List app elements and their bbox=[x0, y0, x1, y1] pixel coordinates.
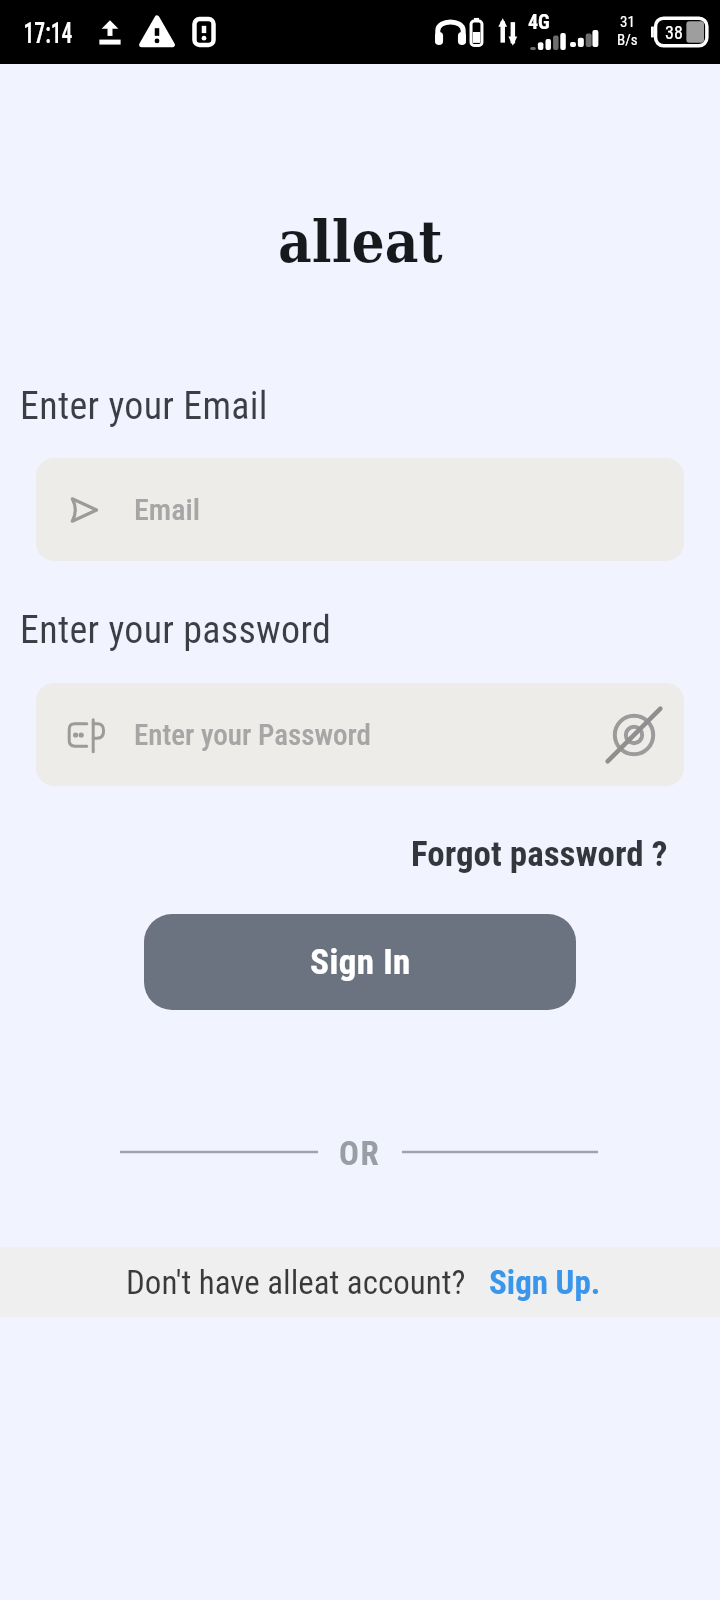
button[interactable]: Email bbox=[36, 458, 684, 561]
button[interactable]: Enter your Password bbox=[36, 683, 684, 786]
staticText: Sign In bbox=[310, 942, 411, 983]
staticText: 17:14 bbox=[23, 15, 72, 50]
button[interactable] bbox=[610, 711, 658, 759]
staticText: alleat bbox=[278, 208, 443, 276]
staticText: Enter your Password bbox=[134, 718, 371, 752]
button[interactable]: Sign In bbox=[144, 914, 576, 1010]
staticText: 38 bbox=[665, 22, 683, 43]
staticText: 31 bbox=[620, 13, 635, 31]
staticText: Email bbox=[134, 492, 201, 527]
staticText: Don't have alleat account? bbox=[126, 1263, 466, 1302]
button[interactable]: Forgot password ? bbox=[411, 834, 668, 875]
staticText: 4G bbox=[528, 10, 550, 33]
staticText: Enter your Email bbox=[20, 384, 268, 429]
button[interactable]: Sign Up. bbox=[489, 1263, 601, 1302]
staticText: OR bbox=[339, 1134, 381, 1173]
staticText: Enter your password bbox=[20, 608, 332, 653]
staticText: B/s bbox=[617, 31, 638, 49]
